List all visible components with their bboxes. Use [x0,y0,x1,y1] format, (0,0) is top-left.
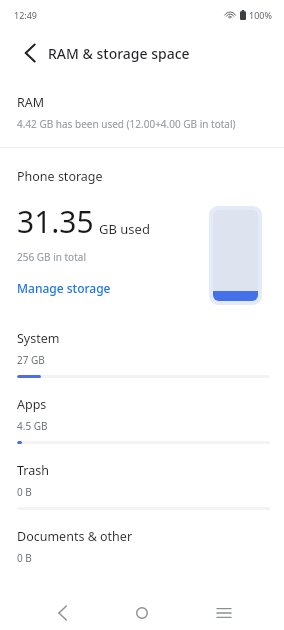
button[interactable]: Apps [0,396,284,462]
button[interactable]: System [0,330,284,396]
staticText: Documents & other [17,528,133,545]
staticText: 100% [249,9,272,21]
button[interactable]: RAM [0,88,284,141]
staticText: Phone storage [17,168,103,185]
staticText: 256 GB in total [17,250,86,264]
staticText: 12:49 [14,9,38,21]
staticText: Apps [17,396,47,413]
staticText: 31.35 [17,201,94,242]
staticText: RAM [17,94,45,111]
button[interactable]: Documents & other [0,528,284,573]
staticText: System [17,330,60,347]
button[interactable]: Back [14,40,40,66]
button[interactable]: Back [38,596,82,630]
button[interactable]: Manage storage [17,280,111,296]
staticText: 4.5 GB [17,419,48,433]
staticText: 0 B [17,551,32,565]
staticText: 4.42 GB has been used (12.00+4.00 GB in … [17,117,236,131]
staticText: GB used [99,220,150,238]
button[interactable]: Recent apps [202,596,246,630]
staticText: Manage storage [17,280,111,296]
button[interactable]: Home [120,596,164,630]
button[interactable]: Trash [0,462,284,528]
staticText: 0 B [17,485,32,499]
staticText: RAM & storage space [48,44,190,63]
staticText: 27 GB [17,353,45,367]
staticText: Trash [17,462,49,479]
